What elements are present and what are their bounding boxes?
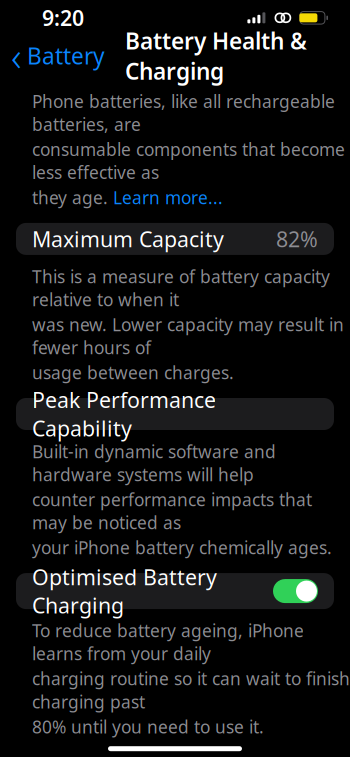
button[interactable]: Maximum Capacity: [16, 223, 334, 255]
staticText: Peak Performance Capability: [32, 386, 216, 442]
button[interactable]: Learn more...: [113, 186, 223, 209]
staticText: Optimised Battery Charging: [32, 563, 217, 619]
staticText: they age.: [32, 186, 113, 209]
staticText: 82%: [276, 225, 318, 253]
staticText: This is a measure of battery capacity re…: [32, 265, 330, 311]
staticText: your iPhone battery chemically ages.: [32, 536, 332, 559]
staticText: Maximum Capacity: [32, 225, 224, 253]
staticText: Phone batteries, like all rechargeable b…: [32, 90, 335, 136]
staticText: usage between charges.: [32, 361, 234, 384]
staticText: was new. Lower capacity may result in fe…: [32, 313, 344, 359]
staticText: Battery: [27, 41, 105, 71]
staticText: ‹: [11, 29, 22, 82]
staticText: To reduce battery ageing, iPhone learns …: [32, 619, 304, 665]
button[interactable]: Optimised Battery Charging: [16, 573, 334, 609]
staticText: 9:20: [42, 4, 84, 32]
button[interactable]: Peak Performance Capability: [16, 398, 334, 430]
staticText: Learn more...: [113, 186, 223, 209]
button[interactable]: ‹: [0, 39, 111, 73]
staticText: consumable components that become less e…: [32, 138, 345, 184]
staticText: counter performance impacts that may be …: [32, 488, 312, 534]
staticText: charging routine so it can wait to finis…: [32, 667, 350, 713]
staticText: Built-in dynamic software and hardware s…: [32, 440, 276, 486]
staticText: Battery Health & Charging: [125, 26, 307, 86]
staticText: 80% until you need to use it.: [32, 715, 264, 738]
